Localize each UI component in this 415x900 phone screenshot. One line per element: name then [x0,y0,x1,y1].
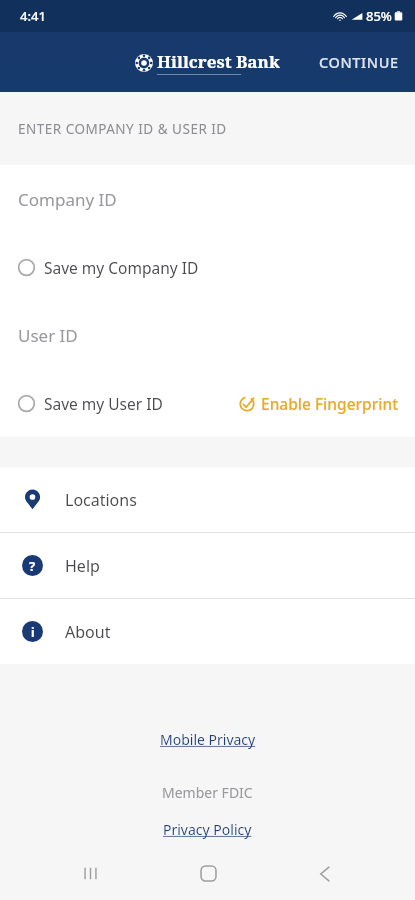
button[interactable]: ? [0,533,415,598]
staticText: Save my Company ID [44,257,199,278]
staticText: ? [29,557,36,575]
button[interactable]: Locations [0,467,415,532]
staticText: User ID [18,324,78,347]
button[interactable]: Home [180,847,236,900]
button[interactable]: User ID [0,301,415,369]
staticText: ENTER COMPANY ID & USER ID [18,120,227,138]
staticText: Save my User ID [44,393,163,414]
staticText: Help [65,555,100,577]
button[interactable]: i [0,599,415,664]
button[interactable]: Save my Company ID [0,249,211,286]
staticText: Hillcrest Bank [157,50,280,73]
staticText: CONTINUE [319,52,399,72]
staticText: Locations [65,489,137,511]
staticText: About [65,621,111,643]
button[interactable]: CONTINUE [303,40,415,84]
button[interactable]: Save my User ID [0,385,175,422]
button[interactable]: Enable Fingerprint [223,383,415,424]
button[interactable]: Company ID [0,165,415,233]
button[interactable]: Privacy Policy [155,816,260,843]
staticText: Enable Fingerprint [261,393,399,414]
button[interactable]: Back [297,847,353,900]
button[interactable]: Recent apps [62,847,118,900]
staticText: 4:41 [20,7,46,25]
staticText: 85% [366,7,392,25]
staticText: i [31,624,35,640]
staticText: Company ID [18,188,117,211]
staticText: Privacy Policy [163,820,252,839]
staticText: Member FDIC [162,783,253,802]
button[interactable]: Mobile Privacy [152,726,264,753]
staticText: Mobile Privacy [160,730,256,749]
